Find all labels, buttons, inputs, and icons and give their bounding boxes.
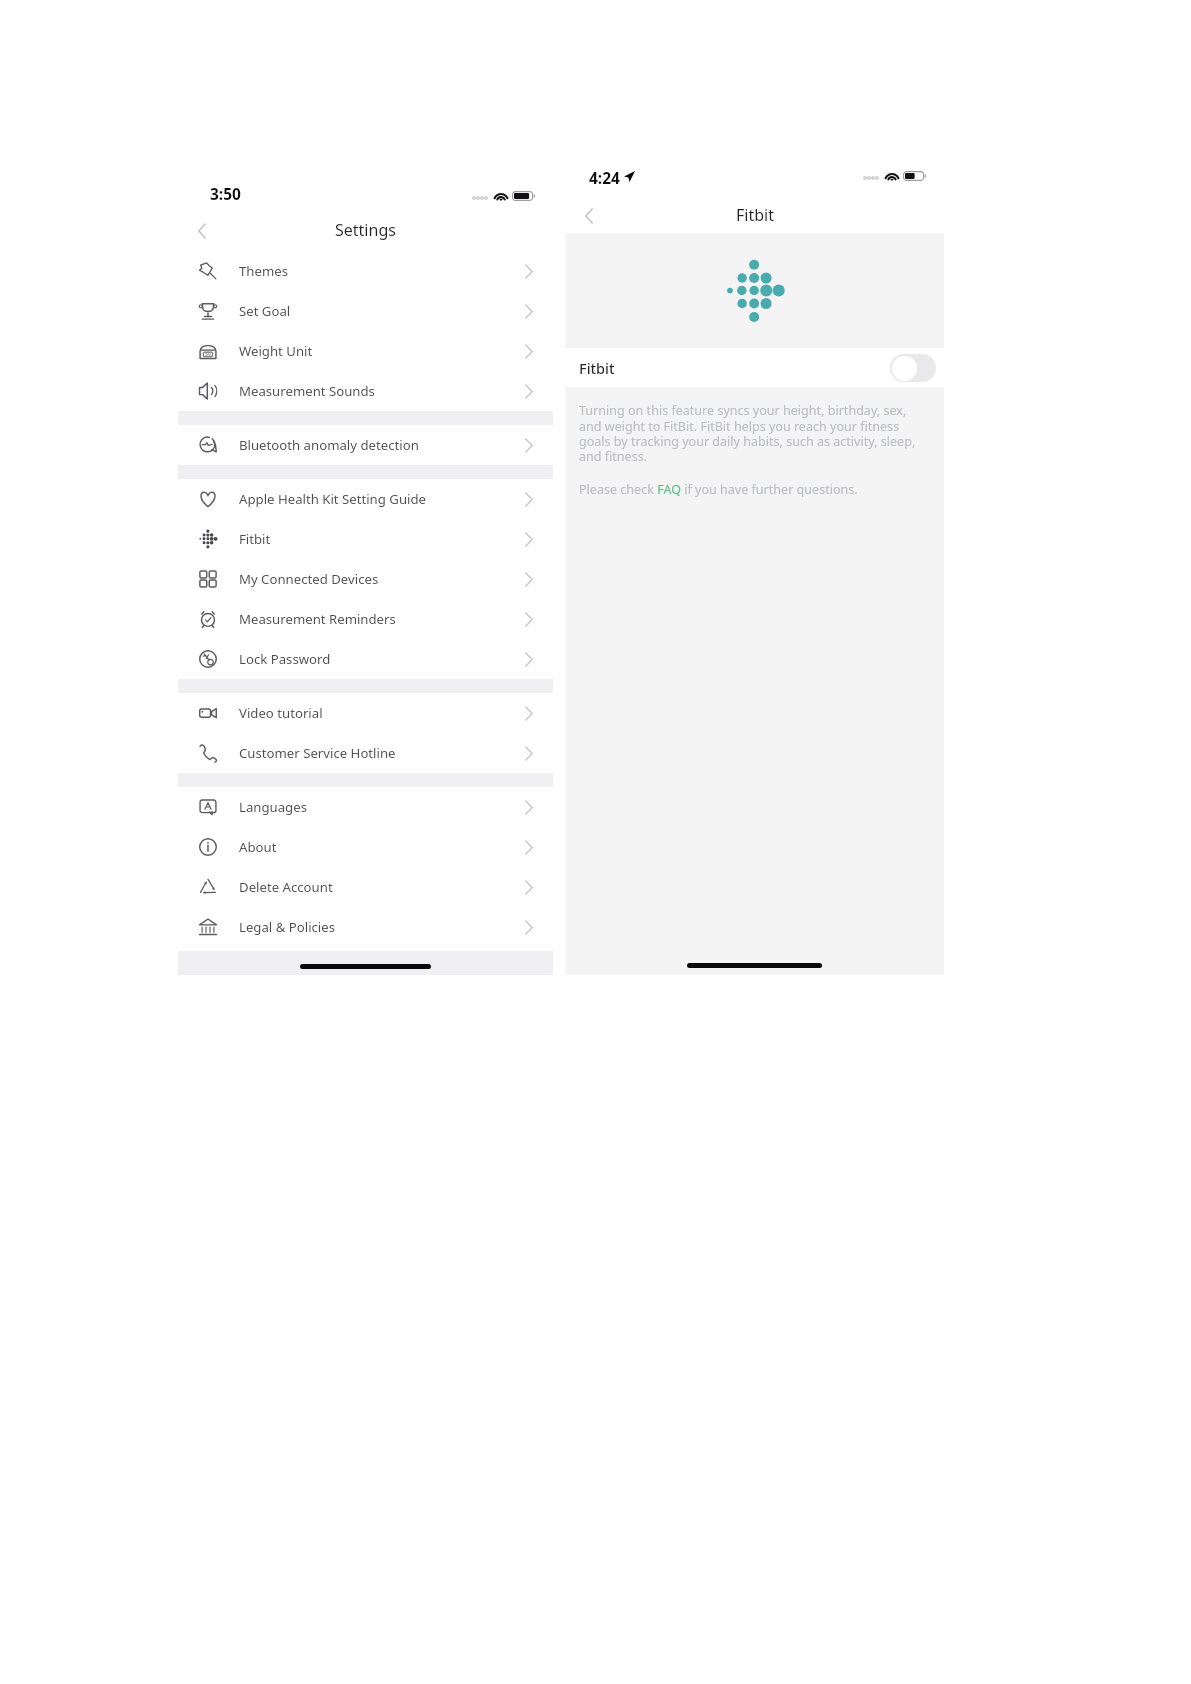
staticText: Apple Health Kit Setting Guide <box>239 490 427 508</box>
button[interactable]: Toggle Fitbit sync <box>890 354 936 382</box>
button[interactable]: Video tutorial <box>178 693 553 733</box>
staticText: Fitbit <box>579 358 615 378</box>
staticText: Fitbit <box>736 204 774 226</box>
staticText: Settings <box>335 219 396 241</box>
button[interactable]: Lock Password <box>178 639 553 679</box>
staticText: Set Goal <box>239 302 291 320</box>
staticText: Turning on this feature syncs your heigh… <box>579 402 916 465</box>
button[interactable]: Legal & Policies <box>178 907 553 947</box>
staticText: Measurement Reminders <box>239 610 396 628</box>
button[interactable]: Customer Service Hotline <box>178 733 553 773</box>
staticText: Languages <box>239 798 307 816</box>
button[interactable]: Measurement Reminders <box>178 599 553 639</box>
button[interactable]: Delete Account <box>178 867 553 907</box>
staticText: Customer Service Hotline <box>239 744 396 762</box>
button[interactable]: Apple Health Kit Setting Guide <box>178 479 553 519</box>
button[interactable]: Bluetooth anomaly detection <box>178 425 553 465</box>
button[interactable]: Themes <box>178 251 553 291</box>
staticText: Bluetooth anomaly detection <box>239 436 419 454</box>
button[interactable]: Set Goal <box>178 291 553 331</box>
staticText: About <box>239 838 277 856</box>
staticText: Delete Account <box>239 878 333 896</box>
staticText: Weight Unit <box>239 342 313 360</box>
staticText: Measurement Sounds <box>239 382 375 400</box>
staticText: Legal & Policies <box>239 918 336 936</box>
staticText: My Connected Devices <box>239 570 379 588</box>
button[interactable]: Back <box>188 217 216 245</box>
button[interactable]: 50 <box>178 331 553 371</box>
staticText: Themes <box>239 262 289 280</box>
staticText: Video tutorial <box>239 704 323 722</box>
staticText: Fitbit <box>239 530 271 548</box>
button[interactable]: Measurement Sounds <box>178 371 553 411</box>
staticText: Please check FAQ if you have further que… <box>579 481 858 498</box>
staticText: 3:50 <box>210 183 241 204</box>
button[interactable]: About <box>178 827 553 867</box>
staticText: Lock Password <box>239 650 331 668</box>
button[interactable]: Fitbit <box>579 348 936 387</box>
button[interactable]: Fitbit <box>178 519 553 559</box>
button[interactable]: Languages <box>178 787 553 827</box>
button[interactable]: Back <box>575 202 603 230</box>
button[interactable]: My Connected Devices <box>178 559 553 599</box>
staticText: 50 <box>205 350 211 357</box>
staticText: 4:24 <box>589 167 620 188</box>
